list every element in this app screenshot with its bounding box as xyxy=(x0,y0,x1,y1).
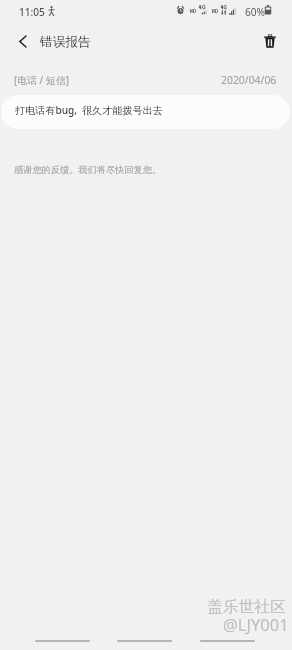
button[interactable]: Delete xyxy=(253,24,286,57)
staticText: 60% xyxy=(245,5,265,19)
staticText: @LJY001 xyxy=(223,613,289,635)
staticText: 打电话有bug, 很久才能拨号出去 xyxy=(15,103,163,117)
button[interactable]: Back xyxy=(6,25,38,57)
button[interactable]: 打电话有bug, 很久才能拨号出去 xyxy=(1,95,290,129)
staticText: 错误报告 xyxy=(40,34,91,50)
staticText: 11:05 xyxy=(19,5,45,19)
staticText: [电话 / 短信] xyxy=(14,73,69,87)
staticText: 盖乐世社区 xyxy=(207,597,286,617)
staticText: 2020/04/06 xyxy=(221,73,277,87)
staticText: 感谢您的反馈。我们将尽快回复您。 xyxy=(14,164,161,176)
